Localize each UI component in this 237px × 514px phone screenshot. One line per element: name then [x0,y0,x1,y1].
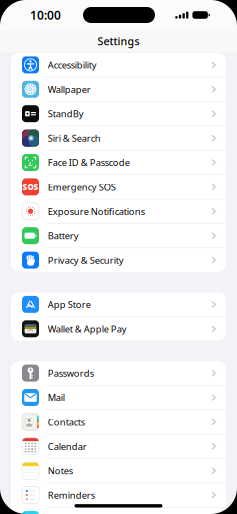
button[interactable]: Privacy & Security [11,248,226,272]
button[interactable]: SOS [11,175,226,199]
staticText: 10:00 [30,7,61,23]
button[interactable]: Face ID & Passcode [11,151,226,174]
staticText: Contacts [48,416,85,428]
staticText: Reminders [48,489,95,501]
staticText: Exposure Notifications [48,205,145,217]
staticText: SOS [22,182,38,192]
staticText: Calendar [48,440,87,452]
button[interactable]: Notes [11,459,226,483]
staticText: Mail [48,391,65,404]
staticText: Wallpaper [48,83,91,95]
button[interactable]: Wallet & Apple Pay [11,317,226,341]
button[interactable]: StandBy [11,102,226,126]
staticText: Passwords [48,367,94,379]
staticText: Wallet & Apple Pay [48,323,127,335]
staticText: Privacy & Security [48,254,124,266]
button[interactable]: Exposure Notifications [11,199,226,223]
staticText: Face ID & Passcode [48,156,130,169]
button[interactable]: Freeform [11,508,226,514]
staticText: Notes [48,464,73,477]
button[interactable]: Passwords [11,361,226,385]
button[interactable]: Battery [11,224,226,248]
staticText: Battery [48,229,79,242]
button[interactable]: Siri & Search [11,126,226,150]
button[interactable]: Calendar [11,434,226,458]
staticText: App Store [48,298,91,311]
button[interactable]: Mail [11,386,226,409]
staticText: Siri & Search [48,132,101,144]
button[interactable]: Reminders [11,483,226,507]
staticText: Accessibility [48,59,97,71]
button[interactable]: App Store [11,292,226,316]
staticText: Settings [97,34,139,48]
button[interactable]: Wallpaper [11,77,226,101]
button[interactable]: Accessibility [11,53,226,77]
staticText: StandBy [48,107,84,120]
staticText: Emergency SOS [48,181,116,193]
button[interactable]: Contacts [11,410,226,434]
